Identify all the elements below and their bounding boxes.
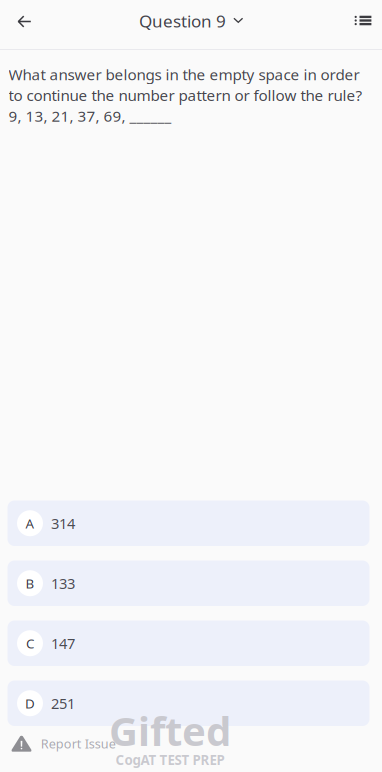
staticText: C	[26, 634, 34, 652]
button[interactable]: Question 9	[131, 4, 251, 44]
staticText: What answer belongs in the empty space i…	[8, 64, 362, 105]
staticText: Question 9	[139, 9, 226, 33]
staticText: CogAT TEST PREP	[115, 751, 224, 769]
staticText: 251	[51, 693, 75, 713]
button[interactable]: Question list	[346, 6, 382, 42]
button[interactable]: B	[7, 560, 369, 606]
staticText: 314	[51, 513, 75, 533]
staticText: Gifted	[109, 703, 231, 758]
staticText: 147	[51, 633, 75, 653]
staticText: 9, 13, 21, 37, 69, ______	[8, 105, 171, 126]
button[interactable]: C	[7, 620, 369, 666]
button[interactable]: Back	[0, 6, 36, 42]
staticText: A	[25, 514, 34, 532]
staticText: D	[25, 694, 35, 712]
button[interactable]: D	[7, 680, 369, 726]
staticText: 133	[51, 573, 75, 593]
button[interactable]: A	[7, 500, 369, 546]
staticText: B	[25, 574, 34, 592]
staticText: Report Issue	[41, 735, 116, 752]
button[interactable]: Report Issue	[0, 726, 382, 772]
